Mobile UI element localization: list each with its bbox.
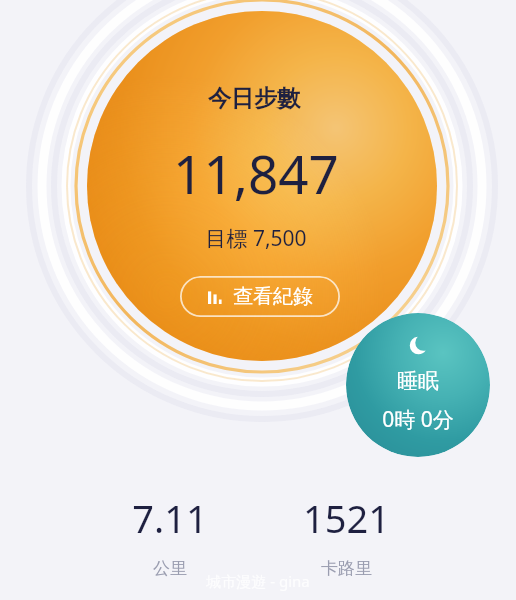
staticText: 查看紀錄 xyxy=(233,284,313,309)
staticText: 目標 7,500 xyxy=(205,224,307,253)
button[interactable]: Sleep xyxy=(346,313,490,457)
staticText: 11,847 xyxy=(173,137,339,209)
staticText: 7.11 xyxy=(132,492,208,544)
other: Sleep xyxy=(409,336,428,355)
button[interactable]: 1521 xyxy=(286,492,406,579)
button[interactable]: 7.11 xyxy=(110,492,230,579)
staticText: 0時 0分 xyxy=(382,405,454,434)
staticText: 今日步數 xyxy=(208,84,300,113)
staticText: 公里 xyxy=(153,558,187,579)
staticText: 卡路里 xyxy=(321,558,372,579)
button[interactable]: 查看紀錄 xyxy=(179,276,341,317)
staticText: 1521 xyxy=(303,492,390,544)
staticText: 睡眠 xyxy=(397,368,439,394)
staticText: 城市漫遊 - gina xyxy=(206,571,310,591)
